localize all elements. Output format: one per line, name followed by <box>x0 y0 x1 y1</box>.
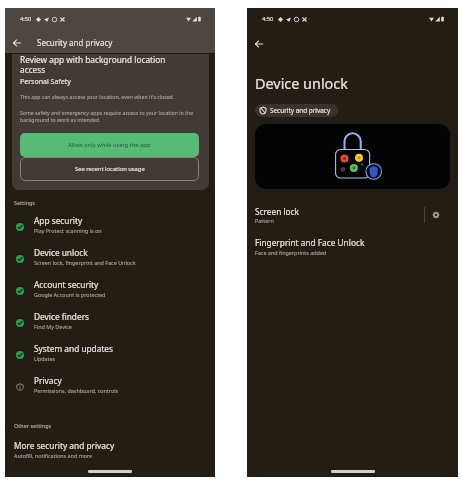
staticText: 4:50 <box>20 15 32 23</box>
staticText: Device finders <box>34 311 90 322</box>
staticText: Some safety and emergency apps require a… <box>20 109 199 124</box>
staticText: Settings <box>14 199 35 206</box>
staticText: System and updates <box>34 343 114 354</box>
staticText: Review app with background location acce… <box>20 54 168 76</box>
staticText: Device unlock <box>34 247 88 258</box>
button[interactable]: Privacy <box>5 368 215 400</box>
staticText: More security and privacy <box>14 440 115 451</box>
staticText: Updates <box>34 355 56 362</box>
button[interactable]: Screen lock settings <box>425 204 447 226</box>
button[interactable]: Account security <box>5 272 215 304</box>
staticText: Security and privacy <box>37 37 113 48</box>
staticText: Face and fingerprints added <box>255 249 327 256</box>
button[interactable]: Back <box>248 33 270 55</box>
button[interactable]: System and updates <box>5 336 215 368</box>
button[interactable]: Device finders <box>5 304 215 336</box>
button[interactable]: See recent location usage <box>20 157 199 181</box>
staticText: Find My Device <box>34 323 72 330</box>
staticText: Pattern <box>255 217 274 224</box>
staticText: Security and privacy <box>270 106 331 115</box>
staticText: Privacy <box>34 375 62 386</box>
staticText: Device unlock <box>255 74 348 94</box>
staticText: App security <box>34 215 83 226</box>
button[interactable]: Screen lock <box>247 203 458 227</box>
staticText: 4:50 <box>262 15 274 23</box>
staticText: See recent location usage <box>75 165 145 173</box>
staticText: Permissions, dashboard, controls <box>34 387 119 394</box>
staticText: Google Account is protected <box>34 291 106 298</box>
staticText: Other settings <box>14 422 52 429</box>
staticText: Screen lock <box>255 206 300 217</box>
button[interactable]: More security and privacy <box>5 440 215 459</box>
button[interactable]: App security <box>5 208 215 240</box>
staticText: Play Protect scanning is on <box>34 227 102 234</box>
staticText: Screen lock, fingerprint and Face Unlock <box>34 259 136 266</box>
button[interactable]: Security and privacy <box>255 104 338 117</box>
staticText: Account security <box>34 279 99 290</box>
staticText: Allow only while using the app <box>68 141 151 149</box>
button[interactable]: Fingerprint and Face Unlock <box>247 237 458 256</box>
staticText: Fingerprint and Face Unlock <box>255 237 365 248</box>
staticText: Autofill, notifications and more <box>14 452 93 459</box>
button[interactable]: Allow only while using the app <box>20 133 199 157</box>
staticText: This app can always access your location… <box>20 93 175 100</box>
button[interactable]: Back <box>6 32 28 54</box>
button[interactable]: Device unlock <box>5 240 215 272</box>
staticText: Personal Safety <box>20 77 71 87</box>
